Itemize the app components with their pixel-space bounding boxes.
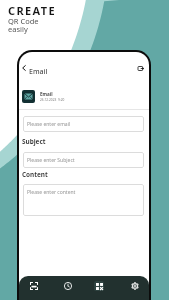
button[interactable]: Email <box>19 88 149 105</box>
staticText: Content <box>22 170 48 179</box>
staticText: Please enter email <box>27 121 71 128</box>
staticText: CREATE <box>8 3 56 18</box>
staticText: Email <box>40 91 53 97</box>
staticText: Subject <box>22 137 46 146</box>
staticText: 26.12.2023 9:20 <box>40 98 65 102</box>
button[interactable]: Create QR code <box>91 278 107 294</box>
button[interactable]: Please enter email <box>23 116 144 132</box>
button[interactable]: Back <box>19 63 29 73</box>
staticText: QR Code easily <box>8 16 39 34</box>
button[interactable]: Settings <box>127 278 143 294</box>
button[interactable]: Please enter Subject <box>23 152 144 168</box>
button[interactable]: Save <box>135 63 146 74</box>
button[interactable]: Scan <box>26 278 42 294</box>
staticText: Please enter content <box>27 189 76 196</box>
staticText: Please enter Subject <box>27 157 75 164</box>
staticText: Email <box>29 67 48 77</box>
button[interactable]: History <box>60 278 76 294</box>
button[interactable]: Please enter content <box>23 184 144 216</box>
